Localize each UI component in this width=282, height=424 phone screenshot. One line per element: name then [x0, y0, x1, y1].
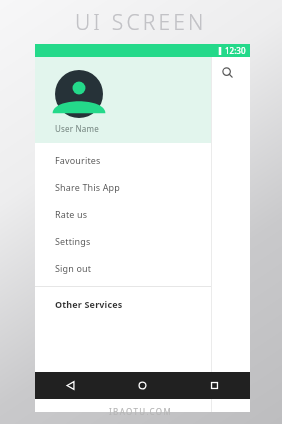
button[interactable]: Back — [35, 372, 106, 399]
button[interactable]: Sign out — [35, 254, 211, 281]
button[interactable]: Home — [106, 372, 178, 399]
staticText: Other Services — [55, 298, 123, 310]
staticText: IBAOTU.COM — [109, 406, 173, 417]
staticText: 12:30 — [225, 45, 246, 56]
button[interactable]: Settings — [35, 227, 211, 254]
staticText: User Name — [55, 123, 99, 134]
staticText: UI SCREEN — [75, 8, 207, 37]
button[interactable]: Share This App — [35, 173, 211, 200]
button[interactable]: Favourites — [35, 146, 211, 173]
staticText: Share This App — [55, 181, 120, 193]
button[interactable]: Other Services — [35, 290, 211, 317]
staticText: Favourites — [55, 154, 101, 166]
staticText: Settings — [55, 235, 91, 247]
button[interactable]: Search — [205, 57, 250, 88]
button[interactable]: Rate us — [35, 200, 211, 227]
staticText: Rate us — [55, 208, 88, 220]
button[interactable]: Recent apps — [178, 372, 250, 399]
staticText: Sign out — [55, 262, 92, 274]
